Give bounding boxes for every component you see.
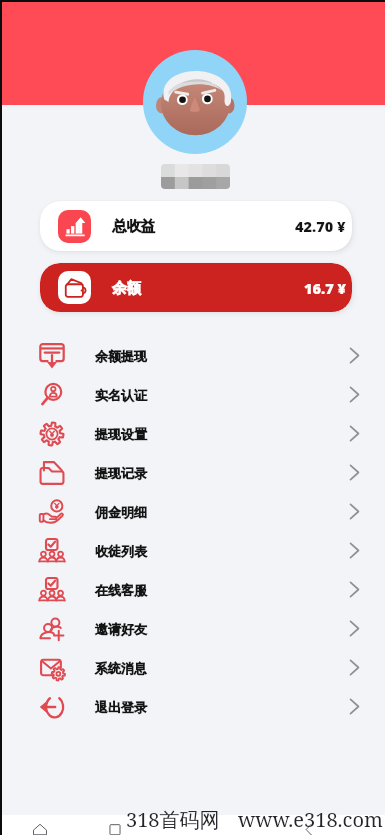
button[interactable]: 提现设置 [0, 414, 385, 453]
staticText: 总收益 [112, 217, 156, 235]
staticText: 退出登录 [95, 699, 147, 715]
staticText: 提现设置 [95, 426, 147, 442]
button[interactable]: Back [300, 820, 318, 835]
staticText: 实名认证 [95, 387, 147, 403]
staticText: 318首码网 [126, 806, 220, 833]
staticText: 16.7 ¥ [304, 278, 346, 298]
button[interactable]: Profile avatar [143, 50, 247, 154]
staticText: 在线客服 [95, 582, 147, 598]
staticText: 邀请好友 [95, 621, 147, 637]
button[interactable]: Home [31, 820, 53, 835]
button[interactable]: 在线客服 [0, 570, 385, 609]
button[interactable]: 总收益 [40, 201, 352, 251]
staticText: 余额 [112, 279, 141, 297]
button[interactable]: 退出登录 [0, 687, 385, 726]
staticText: 系统消息 [95, 660, 147, 676]
button[interactable]: 余额提现 [0, 336, 385, 375]
button[interactable]: 收徒列表 [0, 531, 385, 570]
staticText: 余额提现 [95, 348, 147, 364]
staticText: 收徒列表 [95, 543, 147, 559]
button[interactable]: 实名认证 [0, 375, 385, 414]
button[interactable]: 邀请好友 [0, 609, 385, 648]
button[interactable]: 系统消息 [0, 648, 385, 687]
button[interactable]: 提现记录 [0, 453, 385, 492]
staticText: www.e318.com [238, 806, 383, 833]
staticText: 42.70 ¥ [295, 216, 346, 236]
button[interactable]: 佣金明细 [0, 492, 385, 531]
staticText: 佣金明细 [95, 504, 147, 520]
staticText: 提现记录 [95, 465, 147, 481]
button[interactable]: 余额 [40, 263, 352, 312]
button[interactable]: Recent apps [106, 820, 124, 835]
